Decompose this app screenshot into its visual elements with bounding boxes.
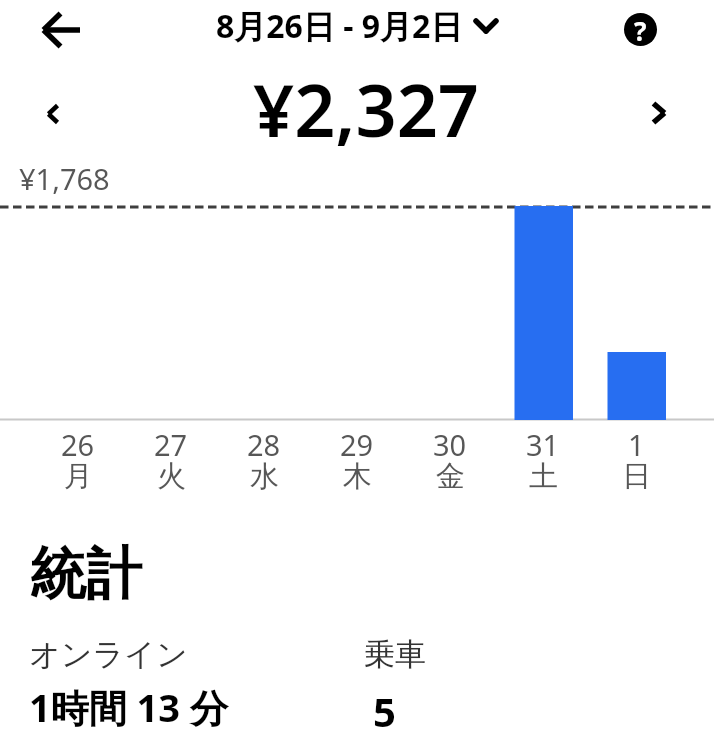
staticText: 乗車: [364, 635, 426, 674]
staticText: 日: [622, 458, 651, 495]
staticText: 金: [436, 458, 465, 495]
button[interactable]: [35, 92, 71, 136]
button[interactable]: [641, 91, 677, 135]
staticText: 月: [64, 458, 93, 495]
staticText: 土: [529, 458, 558, 495]
button[interactable]: 8月26日 - 9月2日: [216, 0, 498, 56]
button[interactable]: [34, 3, 90, 57]
staticText: 統計: [30, 539, 142, 610]
button[interactable]: ¥2,327: [253, 60, 480, 158]
staticText: 8月26日 - 9月2日: [216, 4, 463, 48]
staticText: 水: [250, 458, 279, 495]
staticText: ?: [634, 13, 647, 46]
staticText: 木: [343, 458, 372, 495]
staticText: 31: [526, 425, 560, 464]
staticText: 5: [373, 684, 396, 738]
staticText: 27: [154, 425, 188, 464]
staticText: 28: [247, 425, 281, 464]
staticText: オンライン: [29, 635, 188, 674]
staticText: 1時間 13 分: [29, 681, 228, 733]
button[interactable]: ?: [624, 13, 657, 46]
staticText: 1: [628, 425, 645, 464]
staticText: 火: [157, 458, 186, 495]
staticText: 30: [433, 425, 467, 464]
staticText: ¥2,327: [253, 60, 480, 158]
staticText: 26: [61, 425, 95, 464]
staticText: 29: [340, 425, 374, 464]
staticText: ¥1,768: [19, 159, 110, 198]
